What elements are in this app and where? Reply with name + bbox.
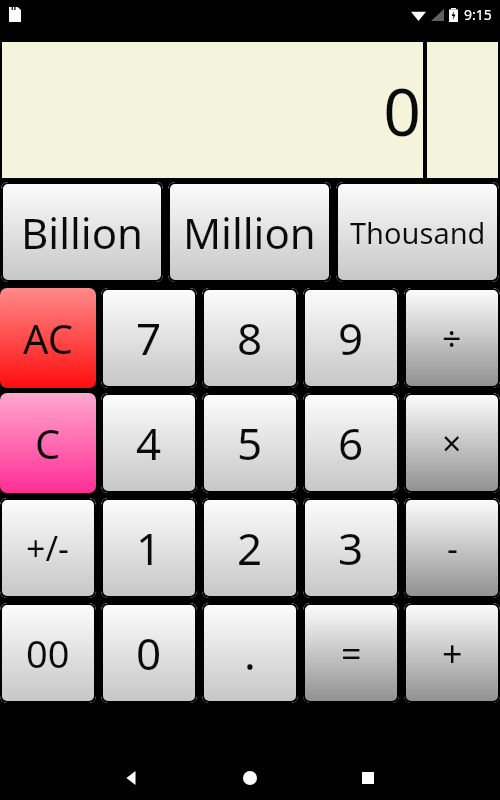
button[interactable]: 7	[101, 288, 197, 388]
staticText: 9	[338, 308, 364, 368]
staticText: 4	[136, 413, 162, 473]
staticText: =	[341, 629, 362, 678]
button[interactable]: Divide	[404, 288, 500, 388]
button[interactable]: 4	[101, 393, 197, 493]
button[interactable]: 0	[101, 603, 197, 703]
button[interactable]: 3	[303, 498, 399, 598]
button[interactable]: AC	[0, 288, 96, 388]
staticText: +	[442, 629, 463, 678]
staticText: AC	[23, 311, 74, 365]
button[interactable]: 5	[202, 393, 298, 493]
button[interactable]: 8	[202, 288, 298, 388]
staticText: 1	[136, 518, 162, 578]
button[interactable]: C	[0, 393, 96, 493]
staticText: 8	[237, 308, 263, 368]
staticText: 3	[338, 518, 364, 578]
staticText: -	[447, 525, 458, 571]
staticText: Million	[183, 204, 316, 261]
button[interactable]: Home	[230, 758, 270, 798]
staticText: 2	[237, 518, 263, 578]
staticText: 6	[338, 413, 364, 473]
staticText: ÷	[442, 315, 462, 361]
staticText: .	[244, 623, 256, 683]
staticText: 0	[136, 623, 162, 683]
button[interactable]: 6	[303, 393, 399, 493]
staticText: 9:15	[464, 5, 492, 24]
button[interactable]: Thousand	[336, 182, 499, 282]
staticText: 5	[237, 413, 263, 473]
button[interactable]: Decimal point	[202, 603, 298, 703]
button[interactable]: Multiply	[404, 393, 500, 493]
staticText: Thousand	[350, 213, 486, 252]
button[interactable]: 1	[101, 498, 197, 598]
button[interactable]: 00	[0, 603, 96, 703]
button[interactable]: Recent apps	[348, 758, 388, 798]
staticText: 00	[26, 627, 70, 679]
staticText: +/-	[26, 525, 70, 571]
staticText: Billion	[21, 204, 144, 261]
button[interactable]: Equals	[303, 603, 399, 703]
button[interactable]: Subtract	[404, 498, 500, 598]
staticText: ×	[442, 420, 462, 466]
button[interactable]: +/-	[0, 498, 96, 598]
staticText: 7	[136, 308, 162, 368]
button[interactable]: 9	[303, 288, 399, 388]
staticText: 0	[0, 65, 421, 155]
staticText: C	[35, 416, 61, 470]
button[interactable]: Billion	[1, 182, 163, 282]
button[interactable]: Add	[404, 603, 500, 703]
button[interactable]: 2	[202, 498, 298, 598]
button[interactable]: Back	[112, 758, 152, 798]
button[interactable]: Million	[168, 182, 331, 282]
